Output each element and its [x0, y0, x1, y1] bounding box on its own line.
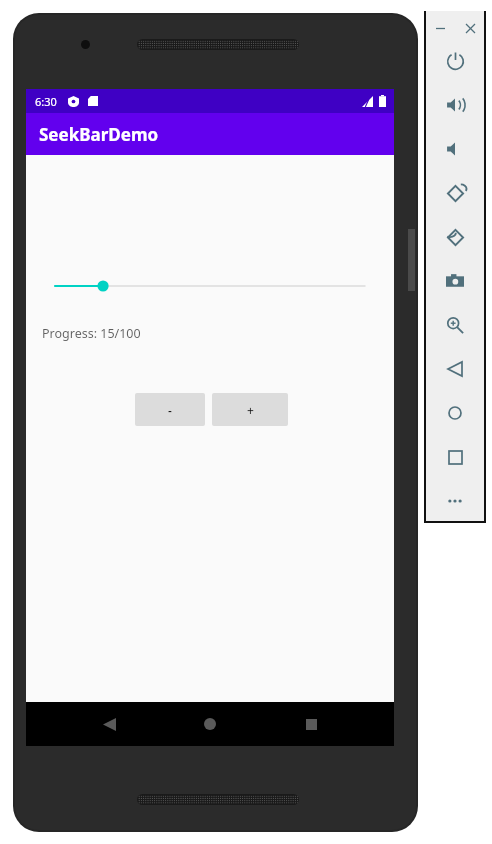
button[interactable]: -	[135, 393, 205, 426]
button[interactable]: Recent apps	[296, 709, 326, 739]
button[interactable]: Rotate right	[440, 222, 470, 252]
button[interactable]: Rotate left	[440, 178, 470, 208]
button[interactable]: Back	[94, 709, 124, 739]
staticText: SeekBarDemo	[39, 123, 159, 146]
button[interactable]: Take screenshot	[440, 266, 470, 296]
button[interactable]: +	[212, 393, 288, 426]
button[interactable]: Volume down	[440, 134, 470, 164]
button[interactable]	[55, 276, 365, 296]
staticText: 6:30	[35, 94, 57, 109]
button[interactable]: Home	[440, 398, 470, 428]
button[interactable]: Back	[440, 354, 470, 384]
staticText: Progress: 15/100	[42, 325, 141, 342]
button[interactable]: Zoom	[440, 310, 470, 340]
button[interactable]: Minimize	[429, 17, 451, 39]
staticText: -	[168, 402, 172, 418]
button[interactable]: Power	[440, 46, 470, 76]
button[interactable]: Recent apps	[440, 442, 470, 472]
button[interactable]: Close	[459, 17, 481, 39]
button[interactable]: Volume up	[440, 90, 470, 120]
button[interactable]: Home	[195, 709, 225, 739]
button[interactable]: More	[440, 486, 470, 516]
staticText: +	[247, 402, 254, 418]
